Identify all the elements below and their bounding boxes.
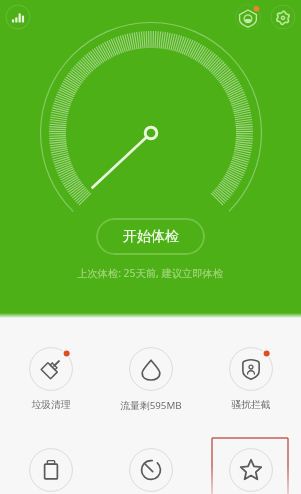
button[interactable]: 开始体检 [96,218,205,255]
button[interactable]: 骚扰拦截 [201,318,301,418]
button[interactable]: 垃圾清理 [0,318,101,418]
button[interactable]: Settings [268,2,298,32]
button[interactable]: Statistics [4,3,32,31]
button[interactable]: Security center [233,2,263,32]
button[interactable]: Favorites [201,418,301,494]
button[interactable]: 流量剩595MB [101,318,201,418]
staticText: 开始体检 [123,228,179,246]
button[interactable]: Timer [101,418,201,494]
staticText: 垃圾清理 [31,399,71,411]
staticText: 上次体检: 25天前, 建议立即体检 [77,266,224,280]
staticText: 流量剩595MB [120,399,182,412]
staticText: 骚扰拦截 [231,399,271,411]
button[interactable]: Battery [0,418,101,494]
